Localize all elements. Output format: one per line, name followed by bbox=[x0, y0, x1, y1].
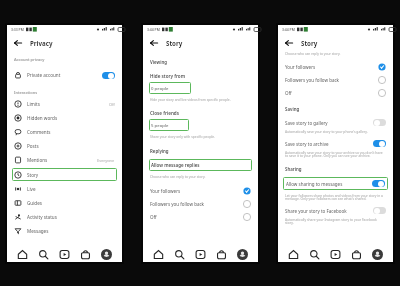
button[interactable]: Select bbox=[378, 76, 386, 84]
staticText: Live bbox=[27, 186, 36, 192]
staticText: Save story to archive bbox=[285, 141, 329, 147]
button[interactable]: Mentions bbox=[7, 153, 122, 167]
staticText: Choose who can reply to your story. bbox=[150, 174, 206, 178]
button[interactable]: Your followers bbox=[143, 184, 258, 197]
button[interactable]: Select bbox=[243, 213, 251, 221]
button[interactable]: Activity status bbox=[7, 210, 122, 224]
button[interactable]: Search bbox=[174, 249, 185, 260]
button[interactable]: Back bbox=[12, 37, 24, 49]
staticText: Automatically save your story to your ar… bbox=[285, 150, 386, 158]
button[interactable]: Hidden words bbox=[7, 111, 122, 125]
button[interactable]: Limits bbox=[7, 97, 122, 111]
staticText: Posts bbox=[27, 143, 39, 149]
staticText: Share your story to Facebook bbox=[285, 208, 347, 214]
staticText: Your followers bbox=[150, 188, 181, 194]
button[interactable]: Reels bbox=[59, 249, 70, 260]
staticText: Off bbox=[109, 102, 115, 107]
button[interactable]: Reels bbox=[195, 249, 206, 260]
staticText: Allow sharing to messages bbox=[286, 181, 343, 187]
staticText: Comments bbox=[27, 129, 51, 135]
button[interactable]: Profile bbox=[101, 249, 112, 260]
staticText: 3:44 PM bbox=[147, 27, 160, 32]
button[interactable]: Story bbox=[12, 168, 117, 181]
staticText: 3:44 PM bbox=[282, 27, 295, 32]
staticText: Interactions bbox=[14, 90, 38, 95]
staticText: Replying bbox=[150, 148, 169, 154]
staticText: Saving bbox=[285, 106, 300, 112]
staticText: Private account bbox=[27, 72, 61, 78]
button[interactable]: Followers you follow back bbox=[143, 197, 258, 210]
button[interactable] bbox=[372, 180, 385, 187]
staticText: Automatically share your Instagram story… bbox=[285, 217, 386, 225]
staticText: Activity status bbox=[27, 214, 57, 220]
staticText: Account privacy bbox=[14, 57, 45, 62]
button[interactable]: Share your story to Facebook bbox=[278, 207, 393, 214]
staticText: Limits bbox=[27, 101, 40, 107]
staticText: Allow message replies bbox=[151, 162, 200, 168]
staticText: Save story to gallery bbox=[285, 120, 328, 126]
staticText: Hidden words bbox=[27, 115, 58, 121]
staticText: Guides bbox=[27, 200, 42, 206]
button[interactable]: Posts bbox=[7, 139, 122, 153]
staticText: Mentions bbox=[27, 157, 48, 163]
staticText: Automatically save your story to your ph… bbox=[285, 129, 368, 133]
staticText: Messages bbox=[27, 228, 49, 234]
button[interactable]: Reels bbox=[330, 249, 341, 260]
staticText: Choose who can reply to your story. bbox=[285, 51, 341, 55]
button[interactable]: Shop bbox=[351, 249, 362, 260]
staticText: Privacy bbox=[30, 39, 53, 47]
button[interactable] bbox=[102, 72, 115, 79]
button[interactable] bbox=[373, 140, 386, 147]
staticText: Off bbox=[150, 214, 157, 220]
staticText: 3:33 PM bbox=[11, 27, 24, 32]
staticText: Followers you follow back bbox=[150, 201, 205, 207]
button[interactable]: Search bbox=[38, 249, 49, 260]
button[interactable]: Comments bbox=[7, 125, 122, 139]
button[interactable]: Save story to archive bbox=[278, 140, 393, 147]
staticText: Everyone bbox=[97, 158, 115, 163]
button[interactable]: Select bbox=[378, 89, 386, 97]
button[interactable]: Select bbox=[243, 200, 251, 208]
button[interactable]: Back bbox=[283, 37, 295, 49]
staticText: Viewing bbox=[150, 59, 167, 65]
button[interactable]: 5 people bbox=[149, 119, 189, 131]
button[interactable]: Your followers bbox=[278, 60, 393, 73]
button[interactable]: Home bbox=[17, 249, 28, 260]
button[interactable]: Select bbox=[243, 187, 251, 195]
staticText: 0 people bbox=[151, 85, 169, 91]
button[interactable]: Shop bbox=[80, 249, 91, 260]
button[interactable]: Search bbox=[309, 249, 320, 260]
staticText: Your followers bbox=[285, 64, 316, 70]
button[interactable]: Allow message replies bbox=[149, 159, 252, 171]
staticText: Hide story from bbox=[150, 73, 186, 79]
staticText: Share your story only with specific peop… bbox=[150, 134, 216, 138]
staticText: Followers you follow back bbox=[285, 77, 340, 83]
button[interactable]: Private account bbox=[7, 68, 122, 82]
button[interactable]: Messages bbox=[7, 224, 122, 238]
staticText: Story bbox=[301, 39, 318, 47]
button[interactable]: Off bbox=[278, 86, 393, 99]
staticText: Close friends bbox=[150, 110, 179, 116]
button[interactable] bbox=[373, 207, 386, 214]
staticText: Story bbox=[166, 39, 183, 47]
button[interactable]: Home bbox=[153, 249, 164, 260]
staticText: Off bbox=[285, 90, 292, 96]
button[interactable]: 0 people bbox=[149, 82, 191, 94]
button[interactable]: Profile bbox=[237, 249, 248, 260]
button[interactable]: Select bbox=[378, 63, 386, 71]
button[interactable]: Back bbox=[148, 37, 160, 49]
button[interactable]: Live bbox=[7, 182, 122, 196]
staticText: Hide your story and live videos from spe… bbox=[150, 97, 231, 101]
button[interactable]: Allow sharing to messages bbox=[283, 177, 388, 190]
button[interactable]: Followers you follow back bbox=[278, 73, 393, 86]
button[interactable]: Save story to gallery bbox=[278, 119, 393, 126]
button[interactable]: Profile bbox=[372, 249, 383, 260]
staticText: Story bbox=[27, 172, 39, 178]
staticText: Sharing bbox=[285, 166, 302, 172]
button[interactable]: Home bbox=[288, 249, 299, 260]
button[interactable]: Shop bbox=[216, 249, 227, 260]
button[interactable]: Off bbox=[143, 210, 258, 223]
button[interactable]: Guides bbox=[7, 196, 122, 210]
staticText: Let your followers share photos and vide… bbox=[285, 193, 386, 201]
button[interactable] bbox=[373, 119, 386, 126]
